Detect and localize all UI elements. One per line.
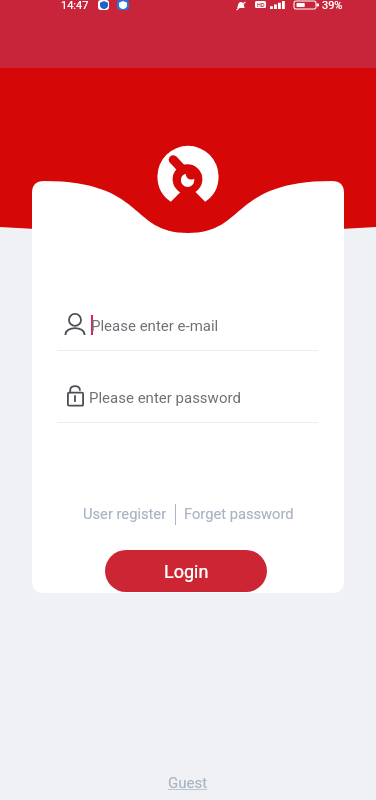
staticText: 14:47 <box>61 0 89 12</box>
staticText: Forget password <box>184 505 294 522</box>
staticText: HD <box>257 2 265 8</box>
button[interactable]: Login <box>105 550 267 592</box>
button[interactable]: User register <box>77 497 175 528</box>
button[interactable]: Please enter e-mail <box>57 305 318 349</box>
staticText: 39% <box>322 0 343 12</box>
staticText: Login <box>164 561 209 582</box>
button[interactable]: Forget password <box>176 497 300 528</box>
button[interactable]: Please enter password <box>57 377 318 421</box>
staticText: User register <box>83 505 167 522</box>
staticText: Guest <box>168 774 208 792</box>
staticText: Please enter e-mail <box>91 317 219 335</box>
button[interactable]: Guest <box>162 768 214 798</box>
staticText: Please enter password <box>89 389 241 407</box>
